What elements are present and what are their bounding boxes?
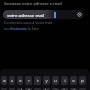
button[interactable]: ou choisissez la liste [4, 26, 39, 31]
button[interactable]: p [79, 76, 86, 85]
button[interactable]: votre adresse mail [3, 10, 84, 19]
staticText: j [55, 88, 57, 90]
staticText: l [73, 88, 75, 90]
button[interactable]: i [61, 76, 68, 85]
button[interactable]: r [25, 76, 32, 85]
button[interactable]: l [70, 88, 77, 90]
button[interactable]: k [61, 88, 68, 90]
button[interactable]: j [52, 88, 59, 90]
button[interactable]: h [43, 88, 50, 90]
button[interactable]: y [43, 76, 50, 85]
staticText: r [28, 78, 30, 84]
button[interactable]: s [9, 88, 15, 90]
staticText: f [28, 88, 30, 90]
button[interactable]: Effacer [77, 12, 82, 17]
staticText: y [45, 78, 48, 84]
staticText: votre adresse mail [7, 12, 45, 18]
staticText: e [19, 78, 22, 84]
button[interactable]: d [17, 88, 23, 90]
button[interactable]: a [1, 76, 7, 85]
staticText: k [63, 88, 66, 90]
staticText: Saisissez votre adresse e-mail [4, 1, 62, 7]
button[interactable]: t [34, 76, 41, 85]
button[interactable]: m [79, 88, 86, 90]
staticText: u [54, 78, 57, 84]
staticText: i [64, 78, 66, 84]
staticText: a [3, 78, 6, 84]
staticText: Connectez-vous à votre liste [4, 20, 53, 25]
button[interactable]: q [1, 88, 7, 90]
button[interactable]: z [9, 76, 15, 85]
staticText: t [37, 78, 39, 84]
staticText: h [45, 88, 48, 90]
button[interactable]: e [17, 76, 23, 85]
staticText: p [81, 78, 84, 84]
button[interactable]: o [70, 76, 77, 85]
button[interactable]: f [25, 88, 32, 90]
staticText: o [72, 78, 75, 84]
button[interactable]: g [34, 88, 41, 90]
button[interactable]: u [52, 76, 59, 85]
staticText: z [11, 78, 13, 84]
staticText: d [19, 88, 22, 90]
